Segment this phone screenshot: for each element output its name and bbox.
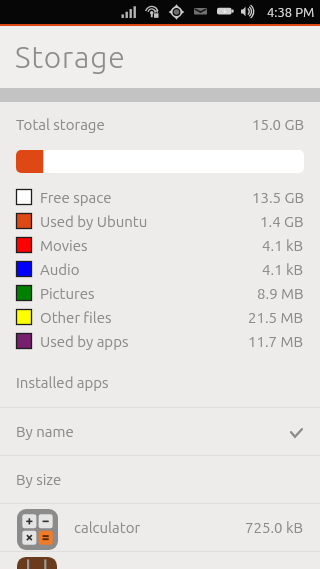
button[interactable]: By size bbox=[0, 456, 320, 503]
staticText: Storage bbox=[15, 40, 126, 74]
staticText: Installed apps bbox=[16, 374, 109, 391]
staticText: 725.0 kB bbox=[245, 519, 304, 536]
staticText: 15.0 GB bbox=[252, 116, 304, 133]
staticText: 1.4 GB bbox=[260, 213, 304, 230]
button[interactable]: By name bbox=[0, 408, 320, 455]
staticText: Other files bbox=[40, 309, 112, 326]
staticText: 4:38 PM bbox=[267, 5, 315, 20]
staticText: 4.1 kB bbox=[262, 237, 304, 254]
staticText: 4.1 kB bbox=[262, 261, 304, 278]
staticText: By size bbox=[16, 471, 62, 488]
staticText: Total storage bbox=[16, 116, 105, 133]
staticText: By name bbox=[16, 423, 74, 440]
other: Selected bbox=[290, 428, 303, 438]
staticText: Free space bbox=[40, 189, 112, 206]
staticText: 21.5 MB bbox=[248, 309, 304, 326]
button[interactable]: calculator bbox=[0, 504, 320, 551]
staticText: Used by Ubuntu bbox=[40, 213, 148, 230]
staticText: Used by apps bbox=[40, 333, 129, 350]
staticText: Movies bbox=[40, 237, 88, 254]
staticText: 8.9 MB bbox=[257, 285, 304, 302]
staticText: 11.7 MB bbox=[248, 333, 304, 350]
staticText: 13.5 GB bbox=[252, 189, 304, 206]
staticText: Pictures bbox=[40, 285, 95, 302]
staticText: Audio bbox=[40, 261, 80, 278]
staticText: calculator bbox=[74, 519, 141, 536]
